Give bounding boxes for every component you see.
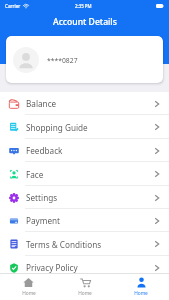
button[interactable]: Privacy Policy xyxy=(0,256,169,279)
staticText: Shopping Guide xyxy=(26,122,88,133)
staticText: Home xyxy=(78,290,92,297)
staticText: Home xyxy=(134,290,148,297)
button[interactable]: Cart xyxy=(57,277,113,297)
staticText: Feedback xyxy=(26,145,63,156)
staticText: Home xyxy=(22,290,36,297)
staticText: Face xyxy=(26,169,44,180)
staticText: ****0827 xyxy=(47,56,78,65)
staticText: Privacy Policy xyxy=(26,262,78,273)
button[interactable]: Payment xyxy=(0,209,169,232)
button[interactable]: Shopping Guide xyxy=(0,115,169,139)
button[interactable]: Feedback xyxy=(0,139,169,162)
button[interactable]: ****0827 xyxy=(6,36,163,83)
button[interactable]: Terms & Conditions xyxy=(0,232,169,256)
staticText: Carrier xyxy=(5,3,21,9)
button[interactable]: Profile xyxy=(113,277,169,297)
button[interactable]: Balance xyxy=(0,92,169,115)
staticText: Account Details xyxy=(53,16,117,28)
staticText: 2:35 PM xyxy=(75,3,92,9)
staticText: Terms & Conditions xyxy=(26,239,102,250)
button[interactable]: Home xyxy=(0,277,57,297)
staticText: Payment xyxy=(26,215,61,226)
staticText: Balance xyxy=(26,98,57,109)
button[interactable]: Face xyxy=(0,162,169,186)
staticText: Settings xyxy=(26,192,58,203)
button[interactable]: Settings xyxy=(0,186,169,209)
